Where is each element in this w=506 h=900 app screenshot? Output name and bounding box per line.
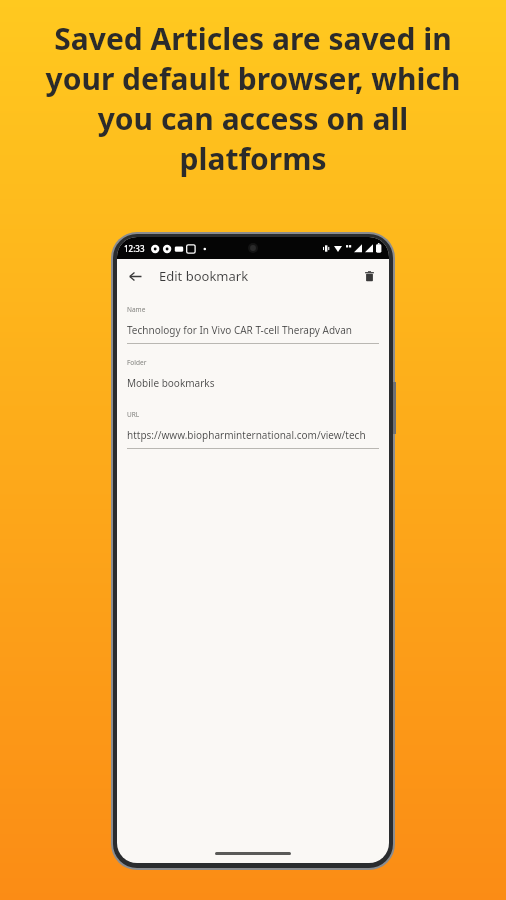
staticText: Folder [127, 358, 147, 367]
staticText: Name [127, 305, 146, 314]
staticText: Edit bookmark [159, 267, 249, 285]
staticText: https://www.biopharminternational.com/vi… [127, 428, 366, 442]
staticText: Mobile bookmarks [127, 376, 215, 390]
button[interactable]: Back [121, 262, 149, 290]
staticText: 12:33 [124, 243, 145, 254]
staticText: Technology for In Vivo CAR T-cell Therap… [127, 323, 352, 337]
staticText: Saved Articles are saved in your default… [26, 18, 480, 179]
button[interactable]: Delete bookmark [355, 262, 383, 290]
staticText: URL [127, 410, 140, 419]
